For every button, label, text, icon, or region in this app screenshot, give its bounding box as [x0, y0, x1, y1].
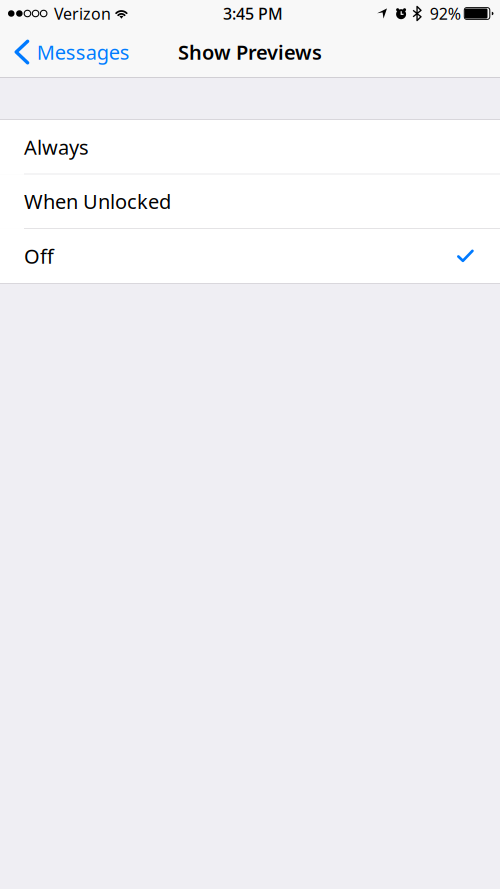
button[interactable]: Messages — [0, 32, 138, 72]
staticText: Off — [24, 243, 54, 269]
staticText: When Unlocked — [24, 188, 171, 215]
button[interactable]: Always — [0, 120, 500, 174]
staticText: Always — [24, 134, 89, 160]
staticText: Verizon — [54, 3, 111, 24]
button[interactable]: Off — [0, 229, 500, 283]
staticText: 3:45 PM — [223, 3, 283, 24]
staticText: Show Previews — [178, 39, 322, 65]
button[interactable]: When Unlocked — [0, 174, 500, 229]
staticText: 92% — [430, 3, 461, 24]
staticText: Messages — [37, 39, 130, 65]
